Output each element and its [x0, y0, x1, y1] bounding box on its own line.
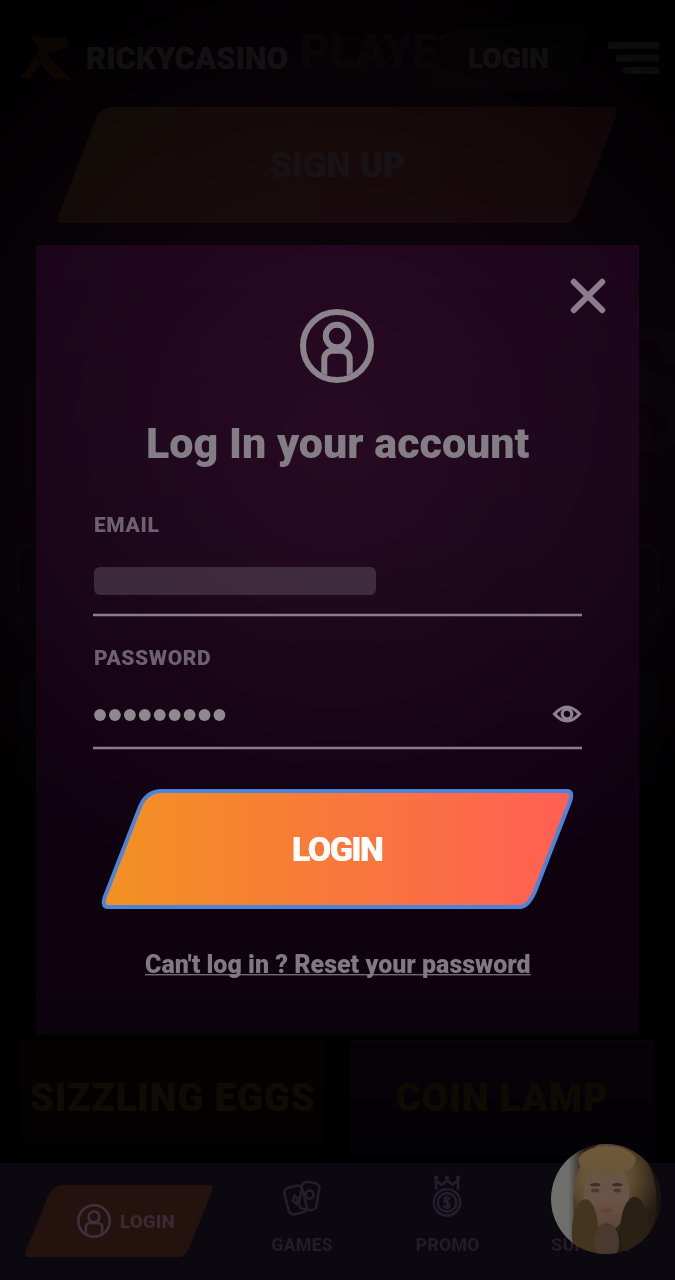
button[interactable]: Show password	[541, 688, 593, 740]
staticText: o	[620, 392, 654, 462]
staticText: LOGIN	[468, 42, 549, 75]
button[interactable]: Can't log in ? Reset your password	[145, 950, 531, 979]
staticText: EMAIL	[94, 513, 160, 538]
staticText: GAMES	[271, 1234, 333, 1255]
button[interactable]: SUPPORT	[532, 1176, 652, 1255]
button[interactable]: LOGIN	[23, 1185, 215, 1257]
button[interactable]: PROMO	[387, 1176, 507, 1255]
staticText: SUPPORT	[551, 1234, 633, 1255]
button[interactable]: Menu	[598, 28, 668, 88]
staticText: RICKYCASINO	[86, 40, 289, 76]
button[interactable]: SIGN UP	[55, 107, 620, 223]
staticText: SIZZLING EGGS	[30, 1076, 316, 1121]
staticText: SIGN UP	[270, 145, 406, 186]
staticText: LOGIN	[120, 1210, 175, 1232]
staticText: S	[596, 268, 675, 500]
button[interactable]: GAMES	[242, 1176, 362, 1255]
button[interactable]: SIZZLING EGGS	[20, 1040, 325, 1156]
staticText: LOGIN	[292, 829, 383, 869]
button[interactable]: Live chat support	[551, 1144, 661, 1254]
button[interactable]: Close	[556, 264, 620, 328]
staticText: PROMO	[415, 1234, 480, 1255]
button[interactable]: LOGIN	[98, 789, 577, 909]
staticText: COIN LAMP	[396, 1076, 609, 1121]
staticText: PASSWORD	[94, 646, 212, 671]
staticText: Log In your account	[146, 418, 530, 468]
button[interactable]: LOGIN	[424, 26, 592, 90]
button[interactable]: COIN LAMP	[350, 1040, 655, 1156]
